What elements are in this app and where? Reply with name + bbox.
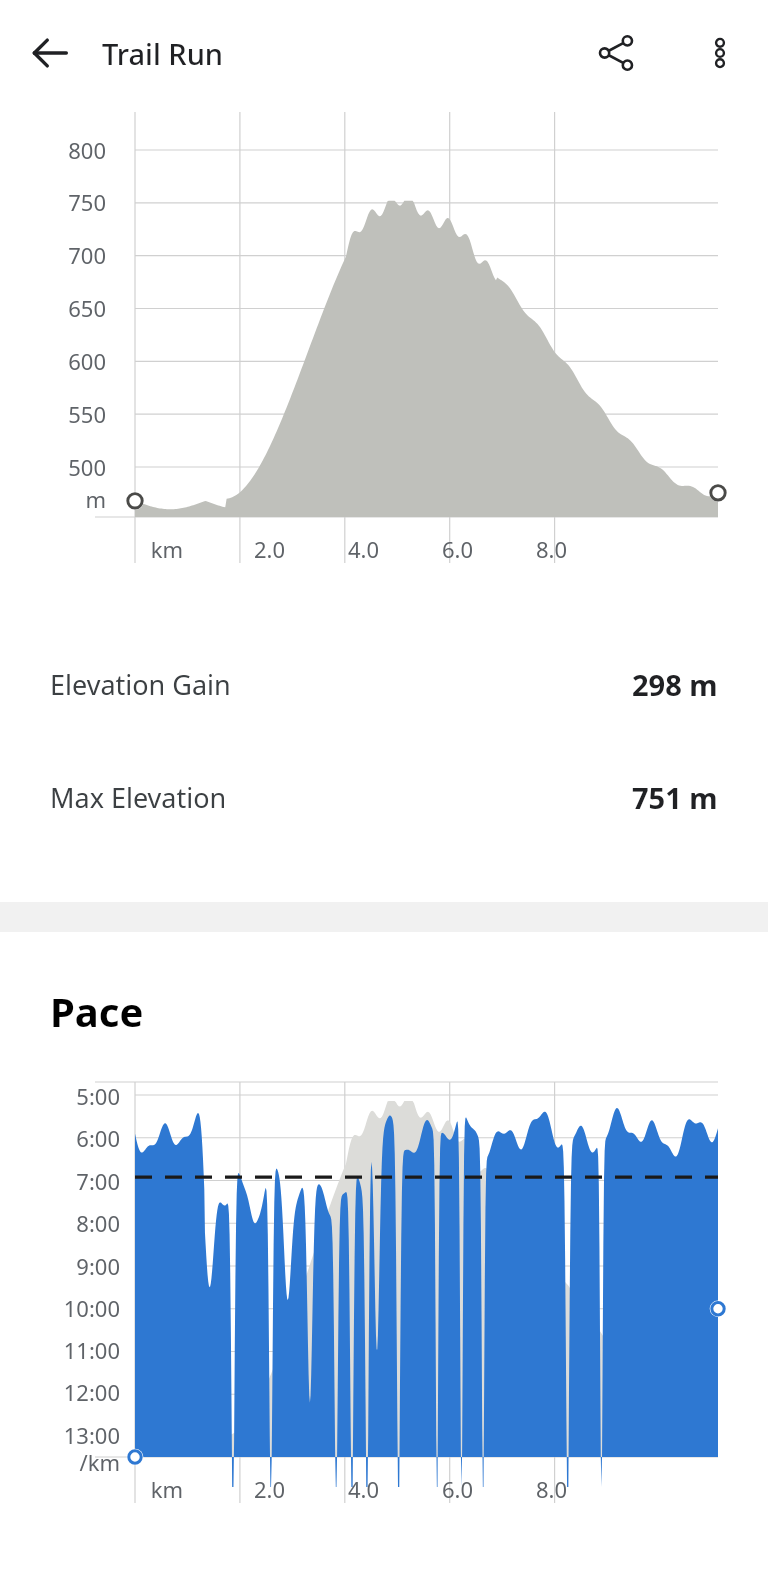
staticText: 6.0 — [441, 1474, 473, 1504]
button[interactable]: Max Elevation — [0, 741, 768, 854]
staticText: 600 — [68, 346, 106, 376]
staticText: 7:00 — [76, 1166, 120, 1196]
staticText: 12:00 — [63, 1377, 120, 1407]
staticText: Max Elevation — [50, 779, 227, 816]
staticText: Elevation Gain — [50, 666, 231, 703]
staticText: Trail Run — [102, 34, 224, 73]
staticText: /km — [79, 1447, 120, 1477]
button[interactable]: More options — [684, 17, 756, 89]
staticText: m — [85, 484, 106, 514]
staticText: 700 — [68, 240, 106, 270]
staticText: 298 m — [632, 665, 718, 704]
staticText: 4.0 — [347, 534, 379, 564]
staticText: 2.0 — [253, 534, 285, 564]
staticText: 8.0 — [535, 1474, 567, 1504]
staticText: 6.0 — [441, 534, 473, 564]
button[interactable]: Elevation Gain — [0, 628, 768, 741]
staticText: 9:00 — [76, 1251, 120, 1281]
staticText: 5:00 — [76, 1081, 120, 1111]
staticText: 800 — [68, 135, 106, 165]
staticText: Pace — [50, 984, 144, 1038]
staticText: 6:00 — [76, 1123, 120, 1153]
button[interactable]: Share — [580, 17, 652, 89]
staticText: 8.0 — [535, 534, 567, 564]
staticText: 750 — [68, 187, 106, 217]
staticText: km — [150, 1474, 183, 1504]
staticText: 8:00 — [76, 1208, 120, 1238]
staticText: 11:00 — [63, 1335, 120, 1365]
staticText: 650 — [68, 293, 106, 323]
button[interactable]: Back — [14, 17, 86, 89]
staticText: 4.0 — [347, 1474, 379, 1504]
staticText: km — [150, 534, 183, 564]
staticText: 13:00 — [63, 1420, 120, 1450]
staticText: 10:00 — [63, 1293, 120, 1323]
staticText: 2.0 — [253, 1474, 285, 1504]
staticText: 751 m — [632, 778, 718, 817]
staticText: 550 — [68, 399, 106, 429]
staticText: 500 — [68, 452, 106, 482]
